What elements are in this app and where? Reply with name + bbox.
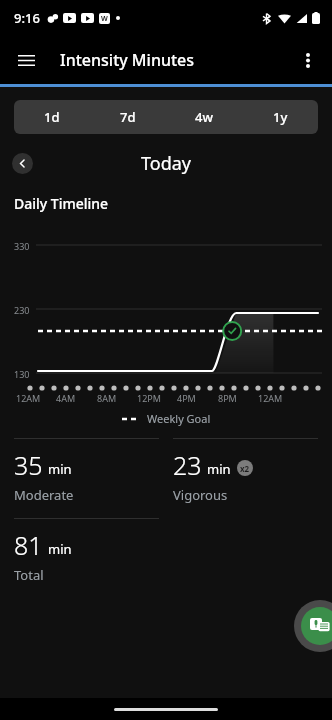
staticText: 35 (14, 448, 43, 482)
staticText: 1y (273, 108, 288, 126)
staticText: 4PM (177, 392, 196, 404)
staticText: Daily Timeline (14, 194, 109, 213)
staticText: Total (14, 566, 44, 584)
staticText: Moderate (14, 486, 74, 504)
button[interactable]: Previous day (12, 153, 33, 174)
button[interactable]: 1y (242, 100, 318, 134)
staticText: 12AM (258, 392, 283, 404)
staticText: 9:16 (14, 9, 40, 27)
button[interactable]: Navigation menu (7, 41, 45, 79)
staticText: 8AM (97, 392, 117, 404)
staticText: x2 (240, 463, 250, 474)
staticText: Intensity Minutes (60, 49, 195, 71)
staticText: 230 (14, 304, 30, 316)
button[interactable]: 1d (14, 100, 90, 134)
staticText: min (48, 540, 72, 558)
button[interactable]: Voice assistant (294, 600, 332, 652)
staticText: 8PM (218, 392, 237, 404)
staticText: Today (141, 151, 191, 176)
staticText: 12PM (137, 392, 161, 404)
staticText: 4AM (56, 392, 76, 404)
staticText: 81 (14, 528, 43, 562)
button[interactable]: 81 (14, 518, 159, 598)
button[interactable]: 23 (173, 438, 318, 518)
staticText: 330 (14, 240, 30, 252)
staticText: min (48, 460, 72, 478)
staticText: 23 (173, 448, 202, 482)
staticText: 130 (14, 368, 30, 380)
staticText: 7d (120, 108, 136, 126)
staticText: Weekly Goal (147, 411, 211, 426)
staticText: min (207, 460, 231, 478)
staticText: Vigorous (173, 486, 228, 504)
button[interactable]: 35 (14, 438, 159, 518)
button[interactable]: 7d (90, 100, 166, 134)
staticText: 1d (44, 108, 60, 126)
button[interactable]: 4w (166, 100, 242, 134)
button[interactable]: More options (289, 41, 327, 79)
staticText: 12AM (16, 392, 41, 404)
staticText: W (101, 14, 108, 24)
staticText: 4w (195, 108, 213, 126)
